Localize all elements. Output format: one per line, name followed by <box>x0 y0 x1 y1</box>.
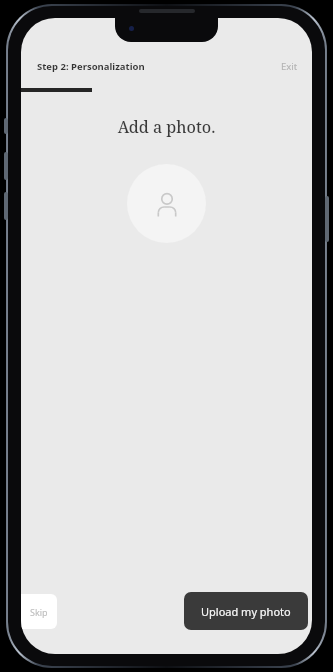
staticText: Skip <box>30 606 48 618</box>
staticText: Exit <box>281 60 298 73</box>
button[interactable]: Add a photo <box>127 164 206 243</box>
staticText: Step 2: Personalization <box>37 60 145 73</box>
button[interactable]: Upload my photo <box>184 592 308 630</box>
button[interactable]: Skip <box>21 594 57 629</box>
staticText: Add a photo. <box>21 116 312 138</box>
staticText: Upload my photo <box>201 604 291 619</box>
button[interactable]: Exit <box>267 56 312 77</box>
